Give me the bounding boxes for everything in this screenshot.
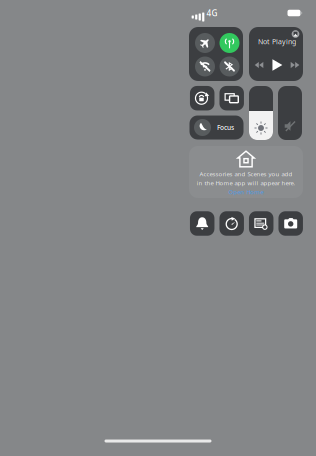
button[interactable]: Airplane Mode [195, 33, 215, 53]
button[interactable]: Camera [278, 211, 303, 236]
button[interactable]: Bluetooth [219, 56, 239, 76]
button[interactable]: Screen Mirroring [219, 86, 244, 110]
button[interactable]: Focus [189, 115, 243, 139]
button[interactable]: Timer [219, 211, 244, 236]
button[interactable]: Volume [278, 86, 302, 140]
button[interactable]: Wi-Fi [195, 56, 215, 76]
button[interactable]: Alarm [190, 211, 214, 236]
button[interactable]: Play [270, 58, 284, 72]
staticText: Open Home [228, 188, 263, 196]
button[interactable]: Brightness [249, 86, 273, 140]
button[interactable]: Next [289, 59, 301, 71]
button[interactable]: Open Home [228, 188, 263, 196]
staticText: Not Playing [258, 37, 296, 46]
button[interactable]: Notes [249, 211, 273, 236]
staticText: Accessories and Scenes you add [199, 170, 292, 178]
staticText: in the Home app will appear here. [196, 179, 295, 187]
staticText: Focus [217, 123, 234, 132]
button[interactable]: Cellular Data [219, 33, 239, 53]
button[interactable]: Previous [253, 59, 265, 71]
button[interactable]: Rotation Lock [190, 86, 214, 110]
button[interactable]: AirPlay [290, 29, 300, 39]
staticText: 4G [206, 7, 217, 19]
